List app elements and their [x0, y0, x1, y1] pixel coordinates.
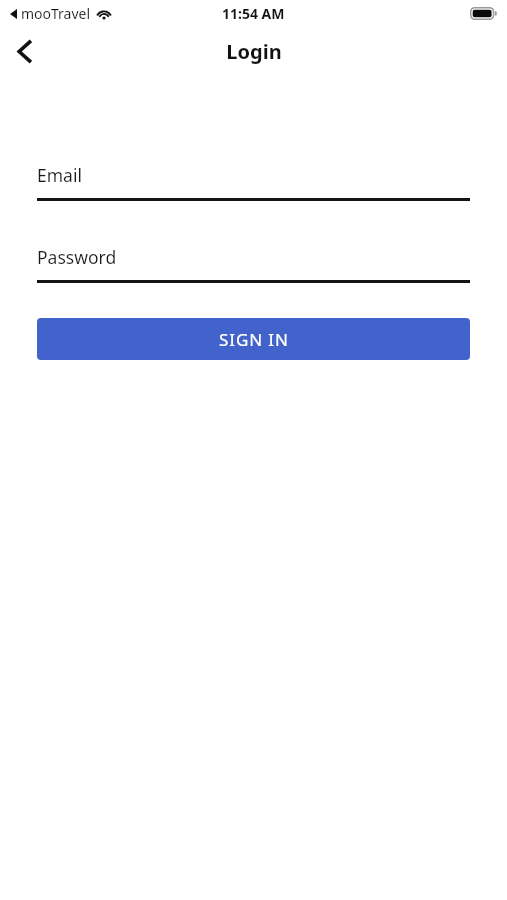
- button[interactable]: Back: [0, 27, 48, 75]
- button[interactable]: Email: [37, 163, 470, 201]
- button[interactable]: Password: [37, 245, 470, 283]
- staticText: Password: [37, 245, 117, 269]
- staticText: 11:54 AM: [222, 4, 285, 23]
- staticText: SIGN IN: [219, 328, 289, 351]
- staticText: mooTravel: [21, 4, 91, 23]
- staticText: Login: [226, 38, 282, 65]
- button[interactable]: SIGN IN: [37, 318, 470, 360]
- staticText: Email: [37, 163, 82, 187]
